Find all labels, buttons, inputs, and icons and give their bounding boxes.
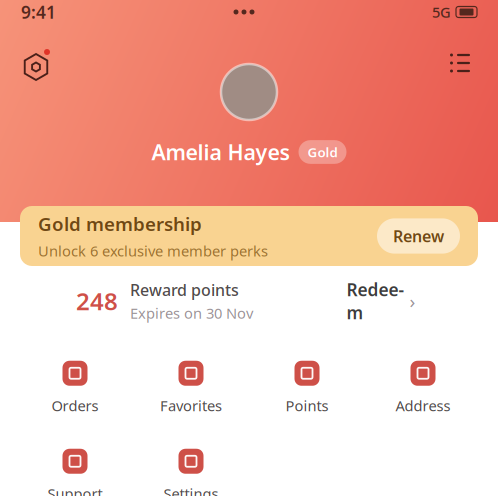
button[interactable]: Support (17, 445, 133, 496)
button[interactable]: 248 (76, 283, 336, 319)
staticText: Amelia Hayes (151, 138, 290, 166)
button[interactable]: Settings (18, 45, 54, 81)
button[interactable]: Address (365, 357, 481, 419)
staticText: Renew (393, 225, 444, 247)
button[interactable]: Redeem (344, 289, 418, 313)
staticText: Orders (51, 396, 98, 415)
staticText: › (409, 289, 415, 313)
staticText: Points (285, 396, 328, 415)
button[interactable]: Favorites (133, 357, 249, 419)
button[interactable]: Menu (442, 45, 478, 81)
staticText: Favorites (160, 396, 222, 415)
staticText: 248 (76, 285, 118, 317)
button[interactable]: Points (249, 357, 365, 419)
button[interactable]: Orders (17, 357, 133, 419)
button[interactable]: Settings (133, 445, 249, 496)
staticText: Reward points (130, 279, 239, 300)
staticText: Gold membership (38, 211, 202, 236)
staticText: Unlock 6 exclusive member perks (38, 241, 268, 261)
staticText: 9:41 (21, 0, 56, 23)
staticText: Support (47, 484, 102, 496)
staticText: Redeem (346, 278, 404, 324)
button[interactable]: Renew (377, 218, 460, 254)
staticText: Address (395, 396, 450, 415)
staticText: 5G (432, 2, 451, 22)
staticText: Expires on 30 Nov (130, 303, 253, 323)
staticText: Settings (163, 484, 218, 496)
staticText: Gold (307, 143, 337, 161)
